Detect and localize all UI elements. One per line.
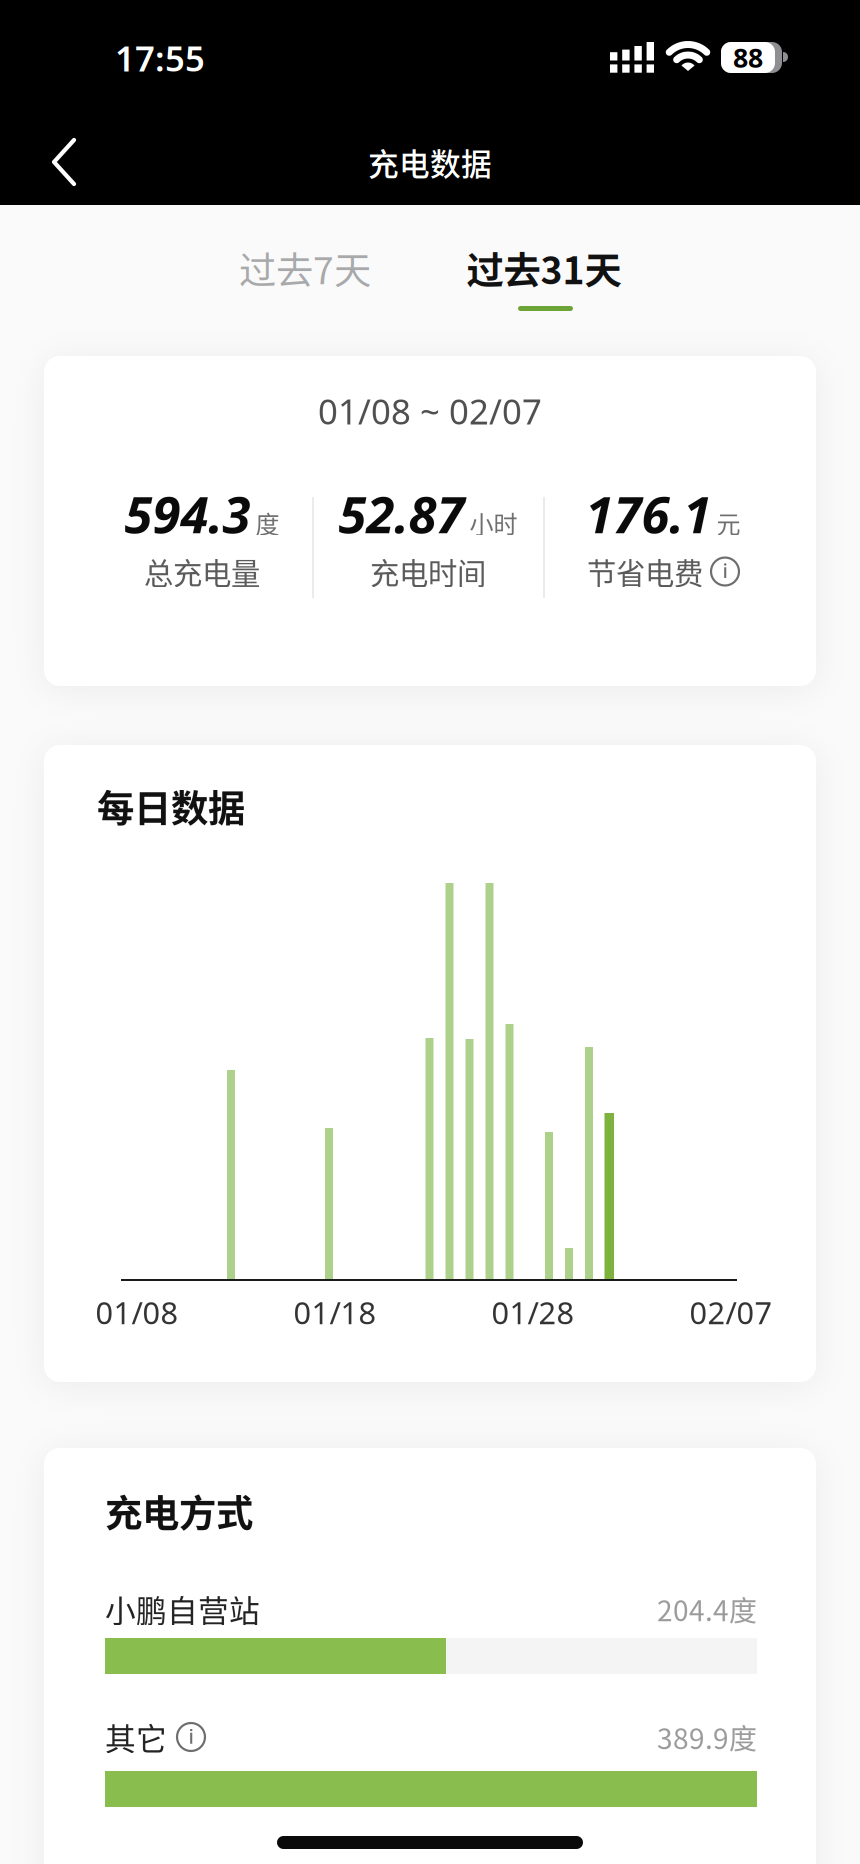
- staticText: 01/08 ~ 02/07: [318, 388, 542, 434]
- staticText: i: [722, 557, 727, 584]
- staticText: 过去7天: [239, 241, 371, 295]
- staticText: 02/07: [689, 1292, 772, 1333]
- staticText: 元: [716, 505, 740, 540]
- staticText: 01/28: [491, 1292, 574, 1333]
- button[interactable]: 过去31天: [424, 223, 664, 313]
- staticText: 17:55: [115, 35, 205, 81]
- button[interactable]: 其它说明: [177, 1723, 205, 1751]
- staticText: i: [188, 1723, 193, 1749]
- staticText: 01/18: [293, 1292, 376, 1333]
- staticText: 充电数据: [368, 140, 492, 184]
- staticText: 389.9度: [657, 1717, 757, 1757]
- staticText: 52.87: [338, 480, 464, 547]
- staticText: 01/08: [95, 1292, 178, 1333]
- staticText: 充电方式: [105, 1484, 253, 1538]
- button[interactable]: 节省电费说明: [711, 557, 739, 585]
- staticText: 度: [255, 505, 279, 540]
- staticText: 小鹏自营站: [105, 1587, 260, 1631]
- staticText: 过去31天: [466, 241, 621, 295]
- button[interactable]: Back: [29, 127, 99, 197]
- staticText: 594.3: [124, 480, 250, 547]
- staticText: 总充电量: [144, 550, 260, 593]
- staticText: 充电时间: [370, 550, 486, 593]
- staticText: 其它: [105, 1715, 167, 1759]
- staticText: 每日数据: [97, 779, 245, 833]
- staticText: 节省电费: [587, 550, 703, 593]
- staticText: 176.1: [585, 480, 711, 547]
- button[interactable]: 过去7天: [185, 223, 425, 313]
- staticText: 小时: [469, 505, 517, 540]
- staticText: 88: [733, 40, 763, 75]
- staticText: 204.4度: [657, 1589, 757, 1629]
